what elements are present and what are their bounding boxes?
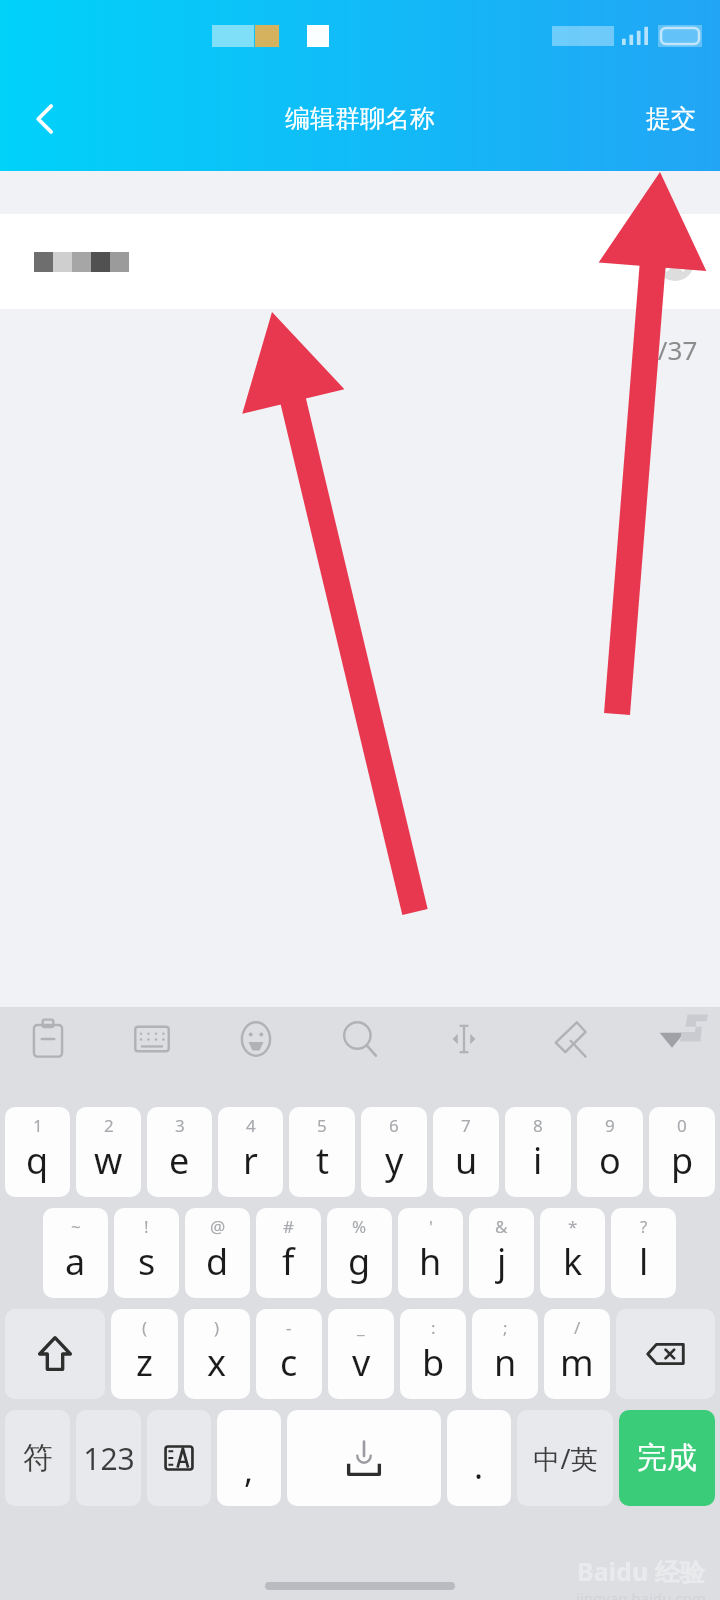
staticText: a <box>65 1237 86 1286</box>
button[interactable]: 提交 <box>636 93 706 144</box>
staticText: 0 <box>677 1114 687 1137</box>
button[interactable]: Back <box>10 84 80 154</box>
staticText: i <box>533 1136 543 1185</box>
staticText: ! <box>144 1215 149 1238</box>
button[interactable]: ' <box>398 1208 463 1298</box>
button[interactable]: - <box>256 1309 322 1399</box>
staticText: ? <box>640 1215 648 1238</box>
staticText: s <box>138 1237 156 1286</box>
staticText: 3 <box>175 1114 185 1137</box>
button[interactable]: Space <box>287 1410 441 1506</box>
staticText: e <box>169 1136 190 1185</box>
staticText: k <box>563 1237 583 1286</box>
button[interactable]: 2 <box>76 1107 141 1197</box>
staticText: Baidu 经验 <box>577 1554 705 1588</box>
staticText: 提交 <box>646 103 696 134</box>
staticText: q <box>26 1136 49 1185</box>
staticText: - <box>286 1316 292 1339</box>
button[interactable]: Clipboard <box>16 1007 80 1071</box>
staticText: % <box>352 1215 367 1238</box>
button[interactable]: _ <box>328 1309 394 1399</box>
button[interactable]: 0 <box>649 1107 715 1197</box>
staticText: _ <box>357 1316 365 1339</box>
button[interactable]: 1 <box>5 1107 70 1197</box>
staticText: u <box>455 1136 478 1185</box>
staticText: 5 <box>317 1114 327 1137</box>
staticText: 9 <box>605 1114 615 1137</box>
button[interactable]: : <box>400 1309 466 1399</box>
button[interactable]: Switch input mode <box>147 1410 211 1506</box>
button[interactable]: . <box>447 1410 511 1506</box>
button[interactable]: 5 <box>289 1107 355 1197</box>
staticText: ' <box>429 1215 433 1238</box>
staticText: x <box>207 1338 227 1387</box>
button[interactable]: ; <box>472 1309 538 1399</box>
button[interactable]: ! <box>114 1208 179 1298</box>
button[interactable]: Collapse keyboard <box>640 1007 704 1071</box>
button[interactable]: Search <box>328 1007 392 1071</box>
staticText: 6 <box>389 1114 399 1137</box>
staticText: v <box>352 1338 371 1387</box>
button[interactable]: ) <box>184 1309 250 1399</box>
staticText: 1 <box>33 1114 43 1137</box>
staticText: 4 <box>246 1114 256 1137</box>
button[interactable]: * <box>540 1208 605 1298</box>
button[interactable]: Emoji <box>224 1007 288 1071</box>
staticText: 符 <box>23 1439 53 1477</box>
button[interactable]: @ <box>185 1208 250 1298</box>
button[interactable]: & <box>469 1208 534 1298</box>
staticText: jingyan.baidu.com <box>576 1588 706 1600</box>
staticText: : <box>431 1316 436 1339</box>
button[interactable]: ? <box>611 1208 676 1298</box>
button[interactable]: 7 <box>433 1107 499 1197</box>
button[interactable]: 符 <box>5 1410 70 1506</box>
button[interactable]: 6 <box>361 1107 427 1197</box>
staticText: c <box>280 1338 298 1387</box>
button[interactable]: 完成 <box>619 1410 715 1506</box>
staticText: . <box>474 1443 484 1489</box>
button[interactable]: Keyboard layout <box>120 1007 184 1071</box>
button[interactable]: Clear text <box>652 239 698 285</box>
staticText: y <box>385 1136 404 1185</box>
button[interactable]: Backspace <box>616 1309 715 1399</box>
staticText: o <box>599 1136 621 1185</box>
button[interactable]: # <box>256 1208 321 1298</box>
button[interactable]: 中/英 <box>517 1410 613 1506</box>
staticText: , <box>244 1447 254 1493</box>
staticText: 编辑群聊名称 <box>285 103 435 134</box>
staticText: 7 <box>461 1114 471 1137</box>
staticText: * <box>568 1215 578 1238</box>
staticText: 8 <box>533 1114 543 1137</box>
button[interactable]: Shift <box>5 1309 105 1399</box>
button[interactable]: / <box>544 1309 610 1399</box>
staticText: p <box>671 1136 694 1185</box>
staticText: l <box>639 1237 649 1286</box>
button[interactable]: 4 <box>218 1107 283 1197</box>
staticText: z <box>136 1338 153 1387</box>
button[interactable]: Theme <box>536 1007 600 1071</box>
staticText: 中/英 <box>533 1440 598 1477</box>
button[interactable]: 123 <box>76 1410 141 1506</box>
staticText: j <box>497 1237 507 1286</box>
button[interactable]: ( <box>111 1309 178 1399</box>
staticText: ~ <box>71 1215 81 1238</box>
staticText: 2 <box>104 1114 114 1137</box>
button[interactable]: Move cursor <box>432 1007 496 1071</box>
staticText: ) <box>214 1316 220 1339</box>
staticText: ; <box>503 1316 508 1339</box>
staticText: n <box>494 1338 517 1387</box>
button[interactable]: 3 <box>147 1107 212 1197</box>
staticText: m <box>560 1338 594 1387</box>
button[interactable]: 8 <box>505 1107 571 1197</box>
button[interactable]: ~ <box>43 1208 108 1298</box>
staticText: d <box>206 1237 229 1286</box>
button[interactable]: % <box>327 1208 392 1298</box>
staticText: f <box>282 1237 295 1286</box>
button[interactable]: 9 <box>577 1107 643 1197</box>
button[interactable]: , <box>217 1410 281 1506</box>
staticText: t <box>316 1136 329 1185</box>
staticText: ( <box>142 1316 148 1339</box>
staticText: g <box>348 1237 371 1286</box>
staticText: & <box>495 1215 508 1238</box>
staticText: h <box>419 1237 442 1286</box>
